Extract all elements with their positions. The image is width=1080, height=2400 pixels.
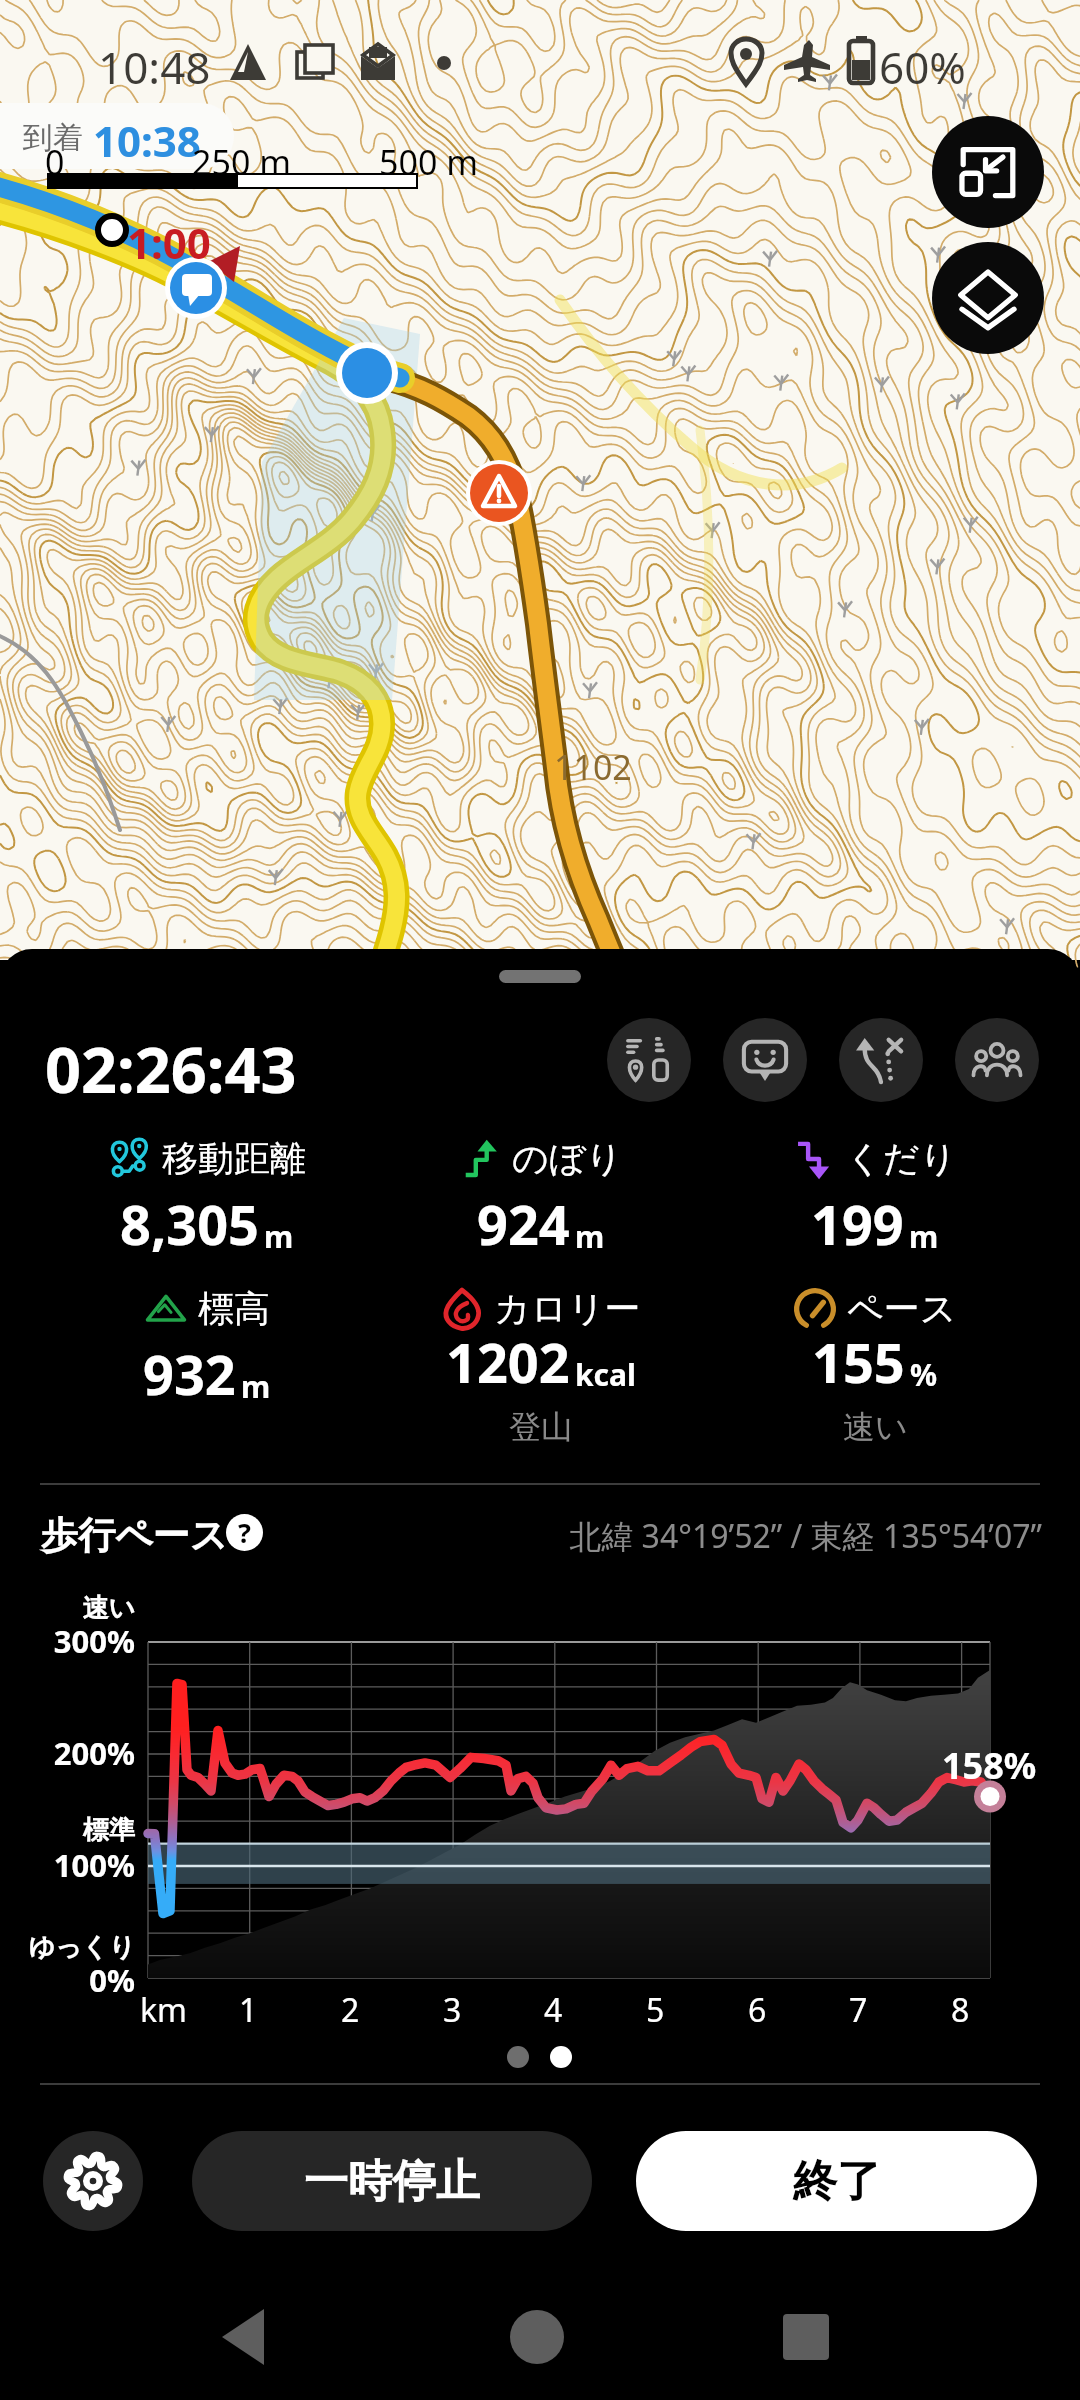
staticText: m [909,1216,939,1257]
button[interactable]: くだり [708,1128,1042,1240]
staticText: kcal [575,1354,636,1395]
staticText: 200% [0,1732,135,1774]
button[interactable]: ルート [839,1018,923,1102]
staticText: 移動距離 [162,1136,306,1181]
button[interactable]: ヘルプ [226,1514,263,1551]
staticText: 8 [951,1988,970,2032]
staticText: 250 m [192,139,291,185]
button[interactable]: 設定 [43,2131,143,2231]
staticText: 100% [0,1844,135,1886]
button[interactable]: メンバー [955,1018,1039,1102]
staticText: 158% [942,1741,1037,1790]
staticText: 速い [0,1592,135,1625]
staticText: m [575,1216,605,1257]
staticText: 0 [45,139,65,185]
button[interactable]: チャット [723,1018,807,1102]
staticText: 速い [843,1407,908,1447]
staticText: 199 [811,1187,904,1261]
button[interactable]: 画面分割 [932,116,1044,228]
staticText: % [910,1354,938,1395]
staticText: m [264,1216,294,1257]
button[interactable]: ホーム [457,2283,617,2391]
button[interactable]: 戻る [190,2283,350,2391]
staticText: 一時停止 [304,2154,480,2209]
staticText: 歩行ペース [41,1512,281,1559]
staticText: 60% [879,37,966,97]
button[interactable]: 移動距離 [40,1128,374,1240]
staticText: 300% [0,1620,135,1662]
staticText: 10:38 [93,112,201,169]
staticText: m [241,1366,271,1407]
staticText: 標準 [0,1814,135,1847]
button[interactable]: ページ 2 [550,2046,572,2068]
button[interactable]: 一時停止 [192,2131,592,2231]
staticText: 北緯 34°19’52” / 東経 135°54’07” [542,1514,1042,1558]
staticText: ペース [847,1286,957,1331]
staticText: ? [238,1514,251,1551]
staticText: km [140,1988,188,2032]
staticText: 登山 [509,1407,573,1447]
button[interactable]: のぼり [374,1128,708,1240]
staticText: 10:48 [98,37,211,97]
staticText: のぼり [512,1136,623,1181]
staticText: くだり [846,1136,957,1181]
staticText: 3 [443,1988,462,2032]
staticText: 5 [646,1988,665,2032]
staticText: 02:26:43 [45,1026,297,1112]
staticText: 6 [748,1988,767,2032]
staticText: 7 [849,1988,868,2032]
button[interactable]: 標高 [40,1278,374,1390]
staticText: 1102 [554,744,632,790]
button[interactable]: レイヤー [932,242,1044,354]
staticText: 1:00 [127,214,211,271]
staticText: 500 m [379,139,478,185]
button[interactable]: カロリー [374,1278,708,1442]
staticText: 1202 [446,1325,570,1399]
staticText: 8,305 [120,1187,259,1261]
staticText: 到着 [23,119,83,157]
button[interactable]: 最近のアプリ [726,2283,886,2391]
button[interactable]: ページ 1 [507,2046,529,2068]
staticText: 1 [239,1988,258,2032]
staticText: 4 [544,1988,563,2032]
staticText: カロリー [494,1286,641,1331]
button[interactable]: 終了 [636,2131,1037,2231]
staticText: 932 [143,1337,236,1411]
staticText: 924 [477,1187,570,1261]
button[interactable]: 写真とメモ [607,1018,691,1102]
staticText: 155 [812,1325,905,1399]
button[interactable]: ペース [708,1278,1042,1442]
staticText: 0% [0,1959,135,2001]
staticText: 2 [341,1988,360,2032]
staticText: ゆっくり [0,1931,135,1964]
staticText: 終了 [793,2154,881,2209]
staticText: 標高 [198,1286,270,1331]
